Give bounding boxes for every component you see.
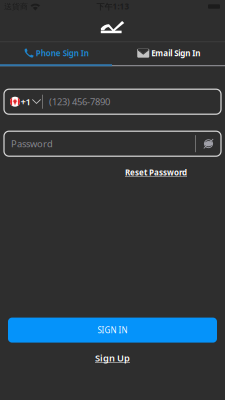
staticText: (123) 456-7890 <box>49 95 110 108</box>
staticText: Email Sign In <box>151 48 200 58</box>
button[interactable]: SIGN IN <box>8 318 217 343</box>
button[interactable]: Reset Password <box>125 167 187 178</box>
button[interactable]: Show password <box>196 131 221 156</box>
staticText: Sign Up <box>95 352 130 364</box>
staticText: SIGN IN <box>97 325 127 335</box>
button[interactable]: Email Sign In <box>112 42 225 64</box>
button[interactable]: Sign Up <box>95 352 130 364</box>
staticText: Phone Sign In <box>36 48 89 58</box>
staticText: +1 <box>20 95 30 108</box>
staticText: Password <box>11 137 53 150</box>
staticText: Reset Password <box>125 167 187 178</box>
button[interactable]: Phone Sign In <box>0 42 112 64</box>
staticText: 下午1:13 <box>97 1 130 12</box>
staticText: 送貨商 <box>4 2 28 11</box>
